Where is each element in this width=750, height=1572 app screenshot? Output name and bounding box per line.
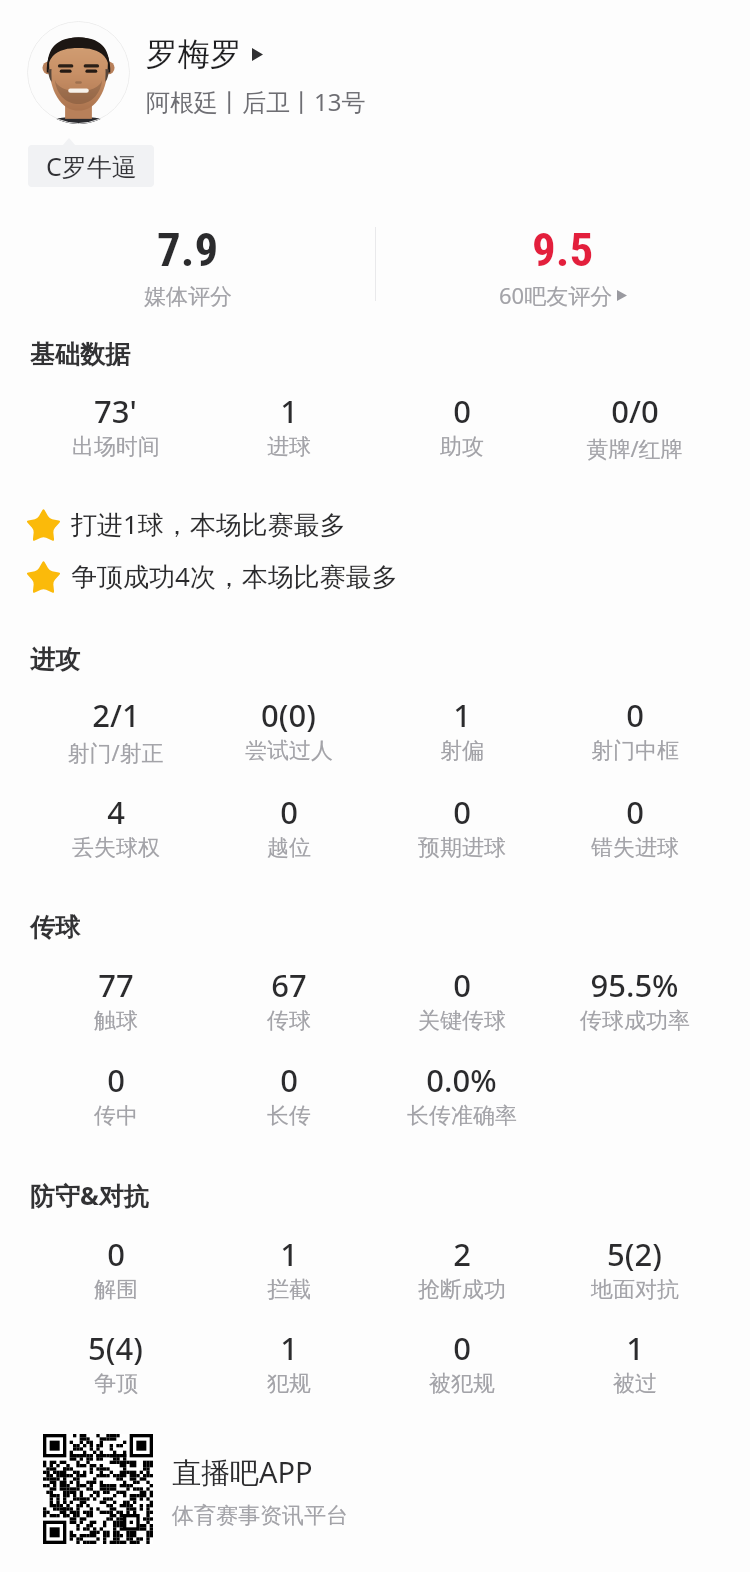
button[interactable]: 1 — [202, 1233, 375, 1304]
button[interactable]: 77 — [29, 964, 202, 1035]
button[interactable]: 0 — [548, 791, 721, 862]
staticText: 0.0% — [426, 1059, 497, 1101]
button[interactable]: 9.5 — [375, 222, 750, 310]
button[interactable]: 1 — [202, 1327, 375, 1398]
staticText: 拦截 — [267, 1276, 311, 1304]
staticText: 体育赛事资讯平台 — [172, 1502, 348, 1530]
staticText: 2 — [453, 1233, 471, 1275]
staticText: 触球 — [94, 1007, 138, 1035]
staticText: 0 — [453, 791, 471, 833]
staticText: 被过 — [613, 1370, 657, 1398]
staticText: 错失进球 — [591, 834, 679, 862]
staticText: 争顶成功4次，本场比赛最多 — [71, 558, 398, 594]
staticText: 射门/射正 — [67, 737, 164, 767]
staticText: 0 — [453, 1327, 471, 1369]
button[interactable]: 1 — [375, 694, 548, 765]
staticText: 进攻 — [30, 644, 80, 675]
button[interactable]: 0.0% — [375, 1059, 548, 1130]
staticText: 传中 — [94, 1102, 138, 1130]
button[interactable]: 67 — [202, 964, 375, 1035]
staticText: 传球成功率 — [580, 1007, 690, 1035]
button[interactable]: 1 — [202, 390, 375, 461]
button[interactable]: Player avatar — [27, 21, 130, 124]
staticText: 0 — [280, 1059, 298, 1101]
staticText: 罗梅罗 — [146, 34, 242, 74]
staticText: 被犯规 — [429, 1370, 495, 1398]
button[interactable]: 打进1球，本场比赛最多 — [0, 501, 750, 549]
button[interactable]: 0 — [548, 694, 721, 765]
staticText: 防守&对抗 — [30, 1178, 149, 1212]
staticText: 0 — [626, 791, 644, 833]
staticText: 射偏 — [440, 737, 484, 765]
staticText: 1 — [280, 1327, 298, 1369]
staticText: 传球 — [267, 1007, 311, 1035]
staticText: 0/0 — [611, 390, 659, 432]
button[interactable]: 直播吧APP — [0, 1420, 750, 1560]
button[interactable]: 0 — [375, 964, 548, 1035]
staticText: 解围 — [94, 1276, 138, 1304]
button[interactable]: 73' — [29, 390, 202, 461]
staticText: 地面对抗 — [591, 1276, 679, 1304]
button[interactable]: 2 — [375, 1233, 548, 1304]
staticText: 争顶 — [94, 1370, 138, 1398]
staticText: 媒体评分 — [144, 283, 232, 311]
staticText: 7.9 — [157, 222, 219, 277]
button[interactable]: 0 — [29, 1059, 202, 1130]
staticText: 长传准确率 — [407, 1102, 517, 1130]
button[interactable]: C罗牛逼 — [28, 145, 154, 187]
staticText: 0(0) — [261, 694, 316, 736]
button[interactable]: 0 — [202, 791, 375, 862]
staticText: 0 — [107, 1059, 125, 1101]
staticText: 丢失球权 — [72, 834, 160, 862]
staticText: 出场时间 — [72, 433, 160, 461]
staticText: 关键传球 — [418, 1007, 506, 1035]
staticText: 2/1 — [92, 694, 140, 736]
button[interactable]: 罗梅罗 — [146, 34, 263, 74]
staticText: C罗牛逼 — [46, 149, 137, 183]
staticText: 0 — [107, 1233, 125, 1275]
button[interactable]: 0 — [375, 791, 548, 862]
staticText: 助攻 — [440, 433, 484, 461]
button[interactable]: 0 — [29, 1233, 202, 1304]
button[interactable]: 5(4) — [29, 1327, 202, 1398]
staticText: 越位 — [267, 834, 311, 862]
button[interactable]: 0 — [202, 1059, 375, 1130]
staticText: 进球 — [267, 433, 311, 461]
staticText: 基础数据 — [30, 339, 130, 370]
staticText: 0 — [280, 791, 298, 833]
button[interactable]: 7.9 — [0, 222, 375, 311]
staticText: 1 — [626, 1327, 644, 1369]
staticText: 直播吧APP — [172, 1452, 313, 1492]
staticText: 尝试过人 — [245, 737, 333, 765]
button[interactable]: 5(2) — [548, 1233, 721, 1304]
staticText: 传球 — [30, 912, 80, 943]
staticText: 60吧友评分 — [499, 280, 613, 310]
staticText: 打进1球，本场比赛最多 — [71, 506, 346, 542]
staticText: 5(2) — [607, 1233, 662, 1275]
staticText: 0 — [453, 390, 471, 432]
staticText: 1 — [280, 1233, 298, 1275]
staticText: 预期进球 — [418, 834, 506, 862]
staticText: 射门中框 — [591, 737, 679, 765]
button[interactable]: 95.5% — [548, 964, 721, 1035]
staticText: 阿根廷丨后卫丨13号 — [146, 85, 366, 118]
button[interactable]: 1 — [548, 1327, 721, 1398]
button[interactable]: 争顶成功4次，本场比赛最多 — [0, 553, 750, 601]
button[interactable]: 0 — [375, 1327, 548, 1398]
staticText: 4 — [107, 791, 125, 833]
staticText: 0 — [453, 964, 471, 1006]
staticText: 1 — [280, 390, 298, 432]
button[interactable]: 0 — [375, 390, 548, 461]
staticText: 长传 — [267, 1102, 311, 1130]
button[interactable]: 4 — [29, 791, 202, 862]
staticText: 1 — [453, 694, 471, 736]
button[interactable]: 2/1 — [29, 694, 202, 767]
staticText: 77 — [98, 964, 134, 1006]
staticText: 0 — [626, 694, 644, 736]
staticText: 抢断成功 — [418, 1276, 506, 1304]
button[interactable]: 0/0 — [548, 390, 721, 463]
button[interactable]: 0(0) — [202, 694, 375, 765]
staticText: 95.5% — [590, 964, 679, 1006]
staticText: 黄牌/红牌 — [586, 433, 683, 463]
staticText: 67 — [271, 964, 307, 1006]
